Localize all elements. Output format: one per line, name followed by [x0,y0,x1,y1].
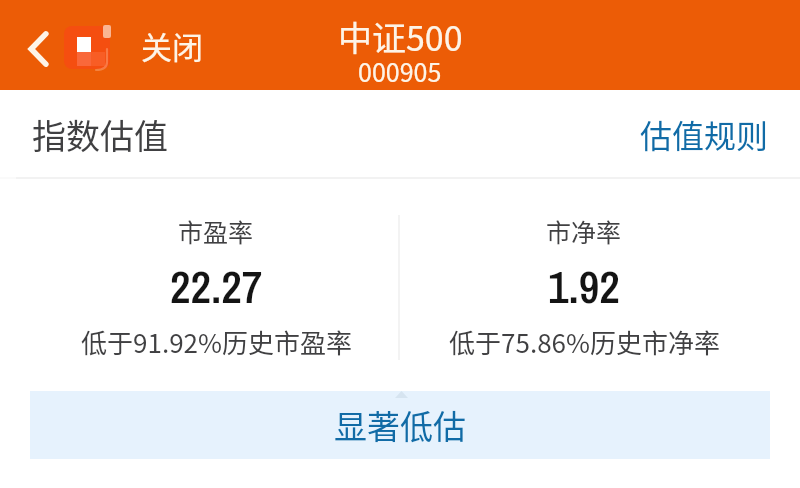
staticText: 市净率 [546,213,622,249]
staticText: 低于75.86%历史市净率 [449,323,720,361]
button[interactable]: 市盈率 [32,179,400,391]
staticText: 关闭 [141,23,203,68]
staticText: 显著低估 [334,401,466,449]
button[interactable]: 显著低估 [30,391,770,459]
button[interactable]: 估值规则 [616,90,800,177]
staticText: 指数估值 [32,110,168,159]
staticText: 22.27 [170,256,263,317]
button[interactable]: Back [14,21,62,69]
button[interactable]: 关闭 [114,0,223,90]
staticText: 低于91.92%历史市盈率 [81,323,352,361]
staticText: 市盈率 [178,213,254,249]
staticText: 估值规则 [640,111,769,157]
staticText: 中证500 [338,12,463,61]
staticText: 000905 [358,53,442,82]
staticText: 1.92 [548,256,620,317]
button[interactable]: 市净率 [400,179,768,391]
